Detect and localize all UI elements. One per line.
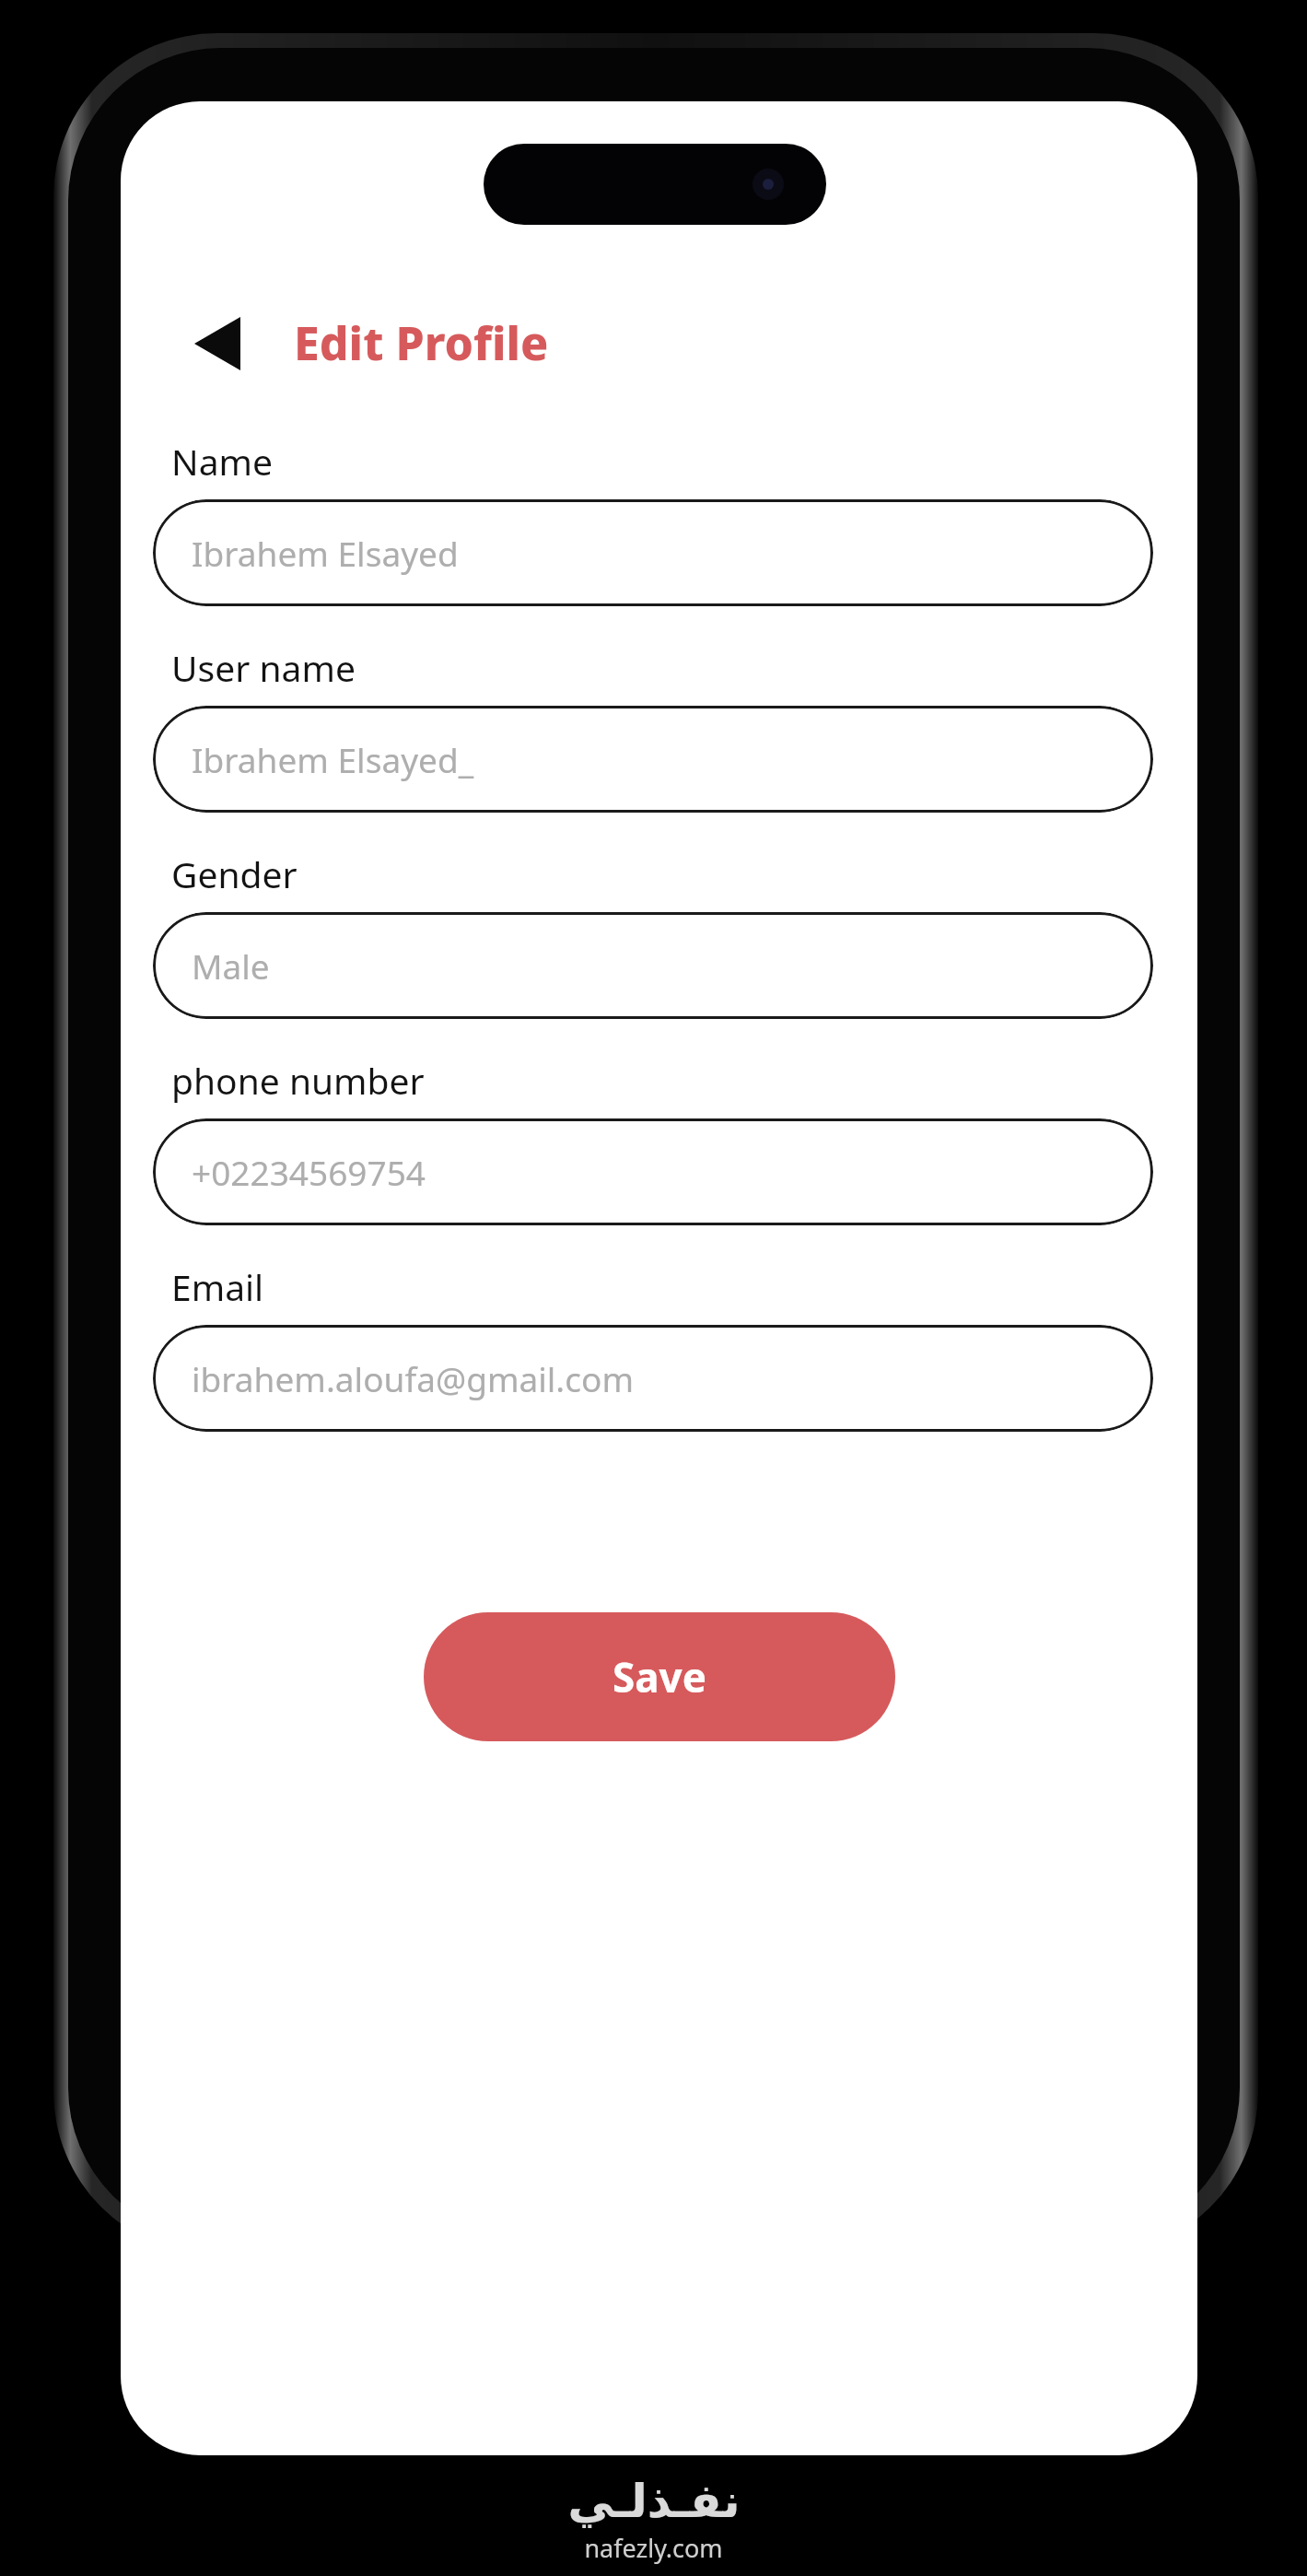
staticText: Save (613, 1649, 706, 1704)
button[interactable]: Male (153, 912, 1153, 1019)
staticText: phone number (171, 1056, 425, 1105)
button[interactable]: Back (174, 300, 261, 387)
button[interactable]: ibrahem.aloufa@gmail.com (153, 1325, 1153, 1432)
button[interactable]: +02234569754 (153, 1118, 1153, 1225)
button[interactable]: Save (424, 1612, 895, 1741)
staticText: Email (171, 1262, 264, 1311)
staticText: nafezly.com (584, 2531, 723, 2565)
staticText: User name (171, 643, 356, 692)
staticText: نفـذلـي (567, 2475, 741, 2528)
button[interactable]: Ibrahem Elsayed (153, 499, 1153, 606)
staticText: Gender (171, 849, 298, 898)
staticText: +02234569754 (192, 1149, 426, 1195)
staticText: Ibrahem Elsayed_ (192, 736, 474, 782)
staticText: Ibrahem Elsayed (192, 530, 459, 576)
staticText: Male (192, 943, 270, 989)
staticText: ibrahem.aloufa@gmail.com (192, 1355, 635, 1401)
button[interactable]: Ibrahem Elsayed_ (153, 706, 1153, 813)
staticText: Name (171, 437, 273, 486)
staticText: Edit Profile (294, 311, 549, 374)
